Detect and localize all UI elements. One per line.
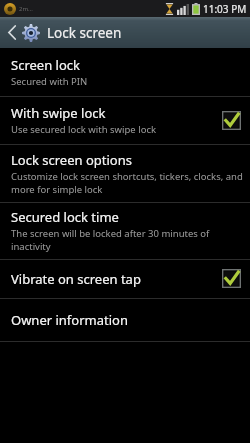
staticText: Secured with PIN [11, 75, 88, 88]
button[interactable]: Screen lock [0, 48, 250, 96]
button[interactable]: With swipe lock [0, 97, 250, 144]
staticText: 2m... [19, 5, 33, 13]
staticText: Vibrate on screen tap [11, 270, 141, 288]
staticText: 11:03 PM [203, 2, 247, 16]
staticText: The screen will be locked after 30 minut… [11, 227, 243, 253]
button[interactable]: Vibrate on screen tap [0, 260, 250, 298]
button[interactable]: Toggle setting [220, 267, 243, 290]
staticText: Lock screen options [11, 151, 132, 169]
staticText: With swipe lock [11, 104, 106, 122]
other: Navigate up [4, 19, 19, 46]
button[interactable]: Lock screen options [0, 145, 250, 202]
button[interactable]: Secured lock time [0, 203, 250, 259]
staticText: Screen lock [11, 56, 80, 74]
button[interactable]: Owner information [0, 299, 250, 341]
staticText: Owner information [11, 311, 128, 329]
button[interactable]: Toggle setting [220, 109, 243, 132]
staticText: Secured lock time [11, 208, 119, 226]
staticText: Lock screen [47, 24, 122, 42]
staticText: Customize lock screen shortcuts, tickers… [11, 170, 243, 196]
button[interactable]: Navigate up [0, 17, 250, 48]
staticText: Use secured lock with swipe lock [11, 123, 157, 136]
